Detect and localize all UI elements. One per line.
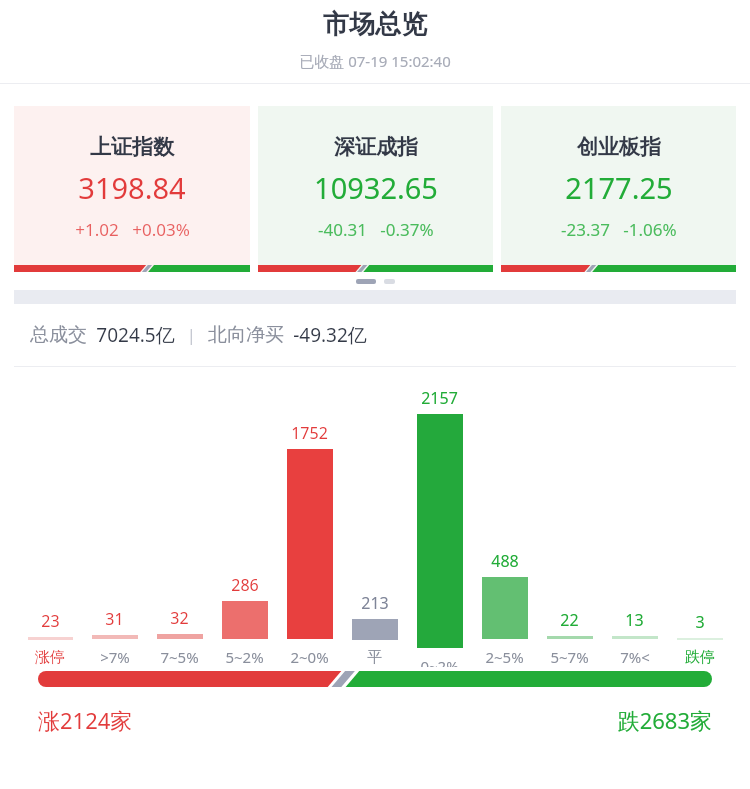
button[interactable]: 总成交 [0,304,750,366]
button[interactable]: 31 [82,608,147,667]
staticText: 488 [491,550,519,572]
staticText: -40.31 [318,218,367,241]
staticText: -23.37 [561,218,610,241]
staticText: 7%< [620,647,650,667]
staticText: 北向净买 [208,323,284,347]
staticText: 平 [367,648,382,667]
staticText: 总成交 [30,323,87,347]
staticText: >7% [100,647,130,667]
button[interactable]: 深证成指 [258,106,493,272]
staticText: 上证指数 [90,134,174,160]
staticText: 213 [361,592,389,614]
button[interactable]: 1752 [277,422,342,667]
button[interactable]: 13 [602,609,667,667]
staticText: 3198.84 [78,168,186,207]
button[interactable]: 涨跌家数比例 [38,671,712,687]
staticText: 286 [231,574,259,596]
staticText: | [187,324,196,346]
staticText: 13 [625,609,644,631]
staticText: +1.02 [75,218,119,241]
staticText: 0~2% [420,656,459,667]
staticText: 2~5% [485,647,524,667]
button[interactable]: 上证指数 [14,106,250,272]
staticText: 2177.25 [565,168,673,207]
button[interactable]: 22 [537,609,602,667]
staticText: 2~0% [290,647,329,667]
button[interactable]: 488 [472,550,537,667]
staticText: +0.03% [132,218,190,241]
button[interactable]: 32 [147,607,212,667]
button[interactable]: 2157 [407,387,472,667]
button[interactable]: 213 [342,592,407,667]
staticText: 32 [170,607,189,629]
staticText: 22 [560,609,579,631]
staticText: 7~5% [160,647,199,667]
staticText: 创业板指 [577,134,661,160]
staticText: 涨2124家 [38,705,133,735]
staticText: -1.06% [623,218,677,241]
staticText: 涨停 [35,648,65,667]
staticText: 5~7% [550,647,589,667]
staticText: 2157 [421,387,458,409]
staticText: 3 [695,611,705,633]
staticText: 10932.65 [314,168,438,207]
staticText: 31 [105,608,124,630]
button[interactable]: 3 [667,611,732,667]
staticText: 跌停 [685,648,715,667]
staticText: 跌2683家 [617,705,712,735]
button[interactable]: 286 [212,574,277,667]
staticText: 5~2% [225,647,264,667]
staticText: 7024.5亿 [96,322,175,348]
staticText: 深证成指 [334,134,418,160]
staticText: -0.37% [380,218,434,241]
staticText: -49.32亿 [293,322,367,348]
staticText: 市场总览 [0,8,750,41]
staticText: 23 [41,610,60,632]
button[interactable]: 创业板指 [501,106,736,272]
staticText: 已收盘 07-19 15:02:40 [0,51,750,71]
button[interactable]: 23 [18,610,82,667]
staticText: 1752 [291,422,328,444]
